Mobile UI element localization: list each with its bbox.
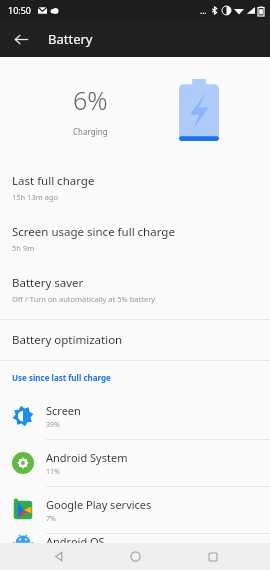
staticText: Screen [46,403,81,418]
staticText: Battery [48,30,93,48]
button[interactable]: Battery optimization [0,320,270,360]
staticText: Last full charge [12,173,95,189]
button[interactable]: Home [115,543,155,570]
staticText: Google Play services [46,497,152,512]
button[interactable]: Android System [0,440,270,486]
staticText: Off / Turn on automatically at 5% batter… [12,294,156,304]
staticText: 11% [46,467,60,477]
staticText: 39% [46,420,60,430]
staticText: Screen usage since full charge [12,224,175,240]
button[interactable]: Battery saver [0,264,270,315]
staticText: Battery saver [12,275,84,291]
staticText: Use since last full charge [12,372,111,383]
staticText: 7% [46,514,56,524]
button[interactable]: Screen [0,393,270,439]
button[interactable]: Last full charge [0,162,270,213]
button[interactable]: Back [8,26,34,52]
staticText: 10:50 [8,4,32,16]
staticText: Android OS [46,534,105,543]
button[interactable]: Screen usage since full charge [0,213,270,264]
staticText: 15h 13m ago [12,192,59,202]
staticText: Charging [73,126,108,137]
button[interactable]: Android OS [0,534,270,543]
button[interactable]: Recents [193,543,233,570]
button[interactable]: Google Play services [0,487,270,533]
staticText: Android System [46,450,128,465]
button[interactable]: Back [38,543,78,570]
staticText: ... [200,5,207,16]
staticText: 5h 9m [12,243,35,253]
staticText: 6% [73,83,108,117]
staticText: Battery optimization [12,332,123,348]
